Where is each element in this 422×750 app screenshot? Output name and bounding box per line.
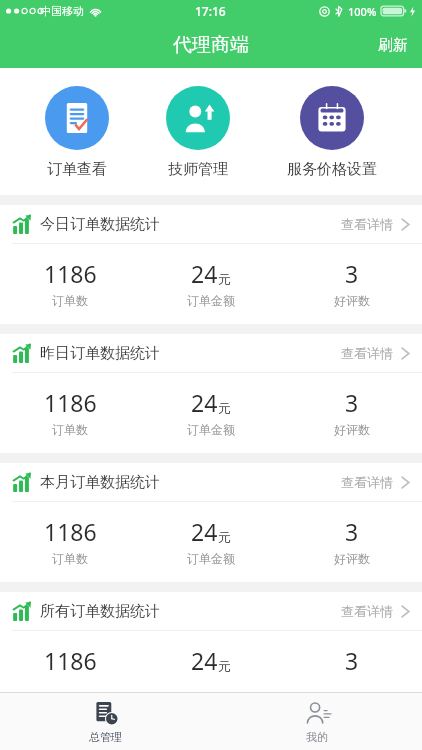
staticText: 元 xyxy=(218,658,231,674)
other: 我的 xyxy=(304,700,330,726)
staticText: 元 xyxy=(218,529,231,545)
staticText: 今日订单数据统计 xyxy=(40,215,160,234)
staticText: 元 xyxy=(218,271,231,287)
staticText: 代理商端 xyxy=(173,33,249,57)
staticText: 订单数 xyxy=(52,422,88,437)
staticText: 100% xyxy=(348,4,377,19)
staticText: 查看详情 xyxy=(341,216,393,232)
staticText: 订单金额 xyxy=(187,293,235,308)
staticText: 所有订单数据统计 xyxy=(40,602,160,621)
staticText: 查看详情 xyxy=(341,474,393,490)
staticText: 3 xyxy=(345,516,359,547)
staticText: 订单数 xyxy=(52,551,88,566)
button[interactable]: 总管理 xyxy=(0,693,211,750)
staticText: 24 xyxy=(191,645,218,676)
staticText: 3 xyxy=(345,258,359,289)
button[interactable]: 所有订单数据统计 xyxy=(0,592,422,630)
staticText: 1186 xyxy=(44,645,97,676)
staticText: 服务价格设置 xyxy=(287,160,377,179)
staticText: 24 xyxy=(191,516,218,547)
staticText: 本月订单数据统计 xyxy=(40,473,160,492)
button[interactable]: 昨日订单数据统计 xyxy=(0,334,422,372)
staticText: 17:16 xyxy=(195,3,226,19)
staticText: 总管理 xyxy=(89,730,122,744)
staticText: 订单查看 xyxy=(47,160,107,179)
other: 总管理 xyxy=(93,700,119,726)
staticText: 1186 xyxy=(44,258,97,289)
button[interactable]: 刷新 xyxy=(364,26,422,65)
button[interactable]: 订单查看 xyxy=(33,86,121,179)
staticText: 3 xyxy=(345,387,359,418)
staticText: 24 xyxy=(191,258,218,289)
staticText: 刷新 xyxy=(378,36,408,55)
staticText: 1186 xyxy=(44,516,97,547)
staticText: 昨日订单数据统计 xyxy=(40,344,160,363)
staticText: 1186 xyxy=(44,387,97,418)
staticText: 查看详情 xyxy=(341,345,393,361)
button[interactable]: 服务价格设置 xyxy=(275,86,389,179)
staticText: 我的 xyxy=(306,730,328,744)
staticText: 好评数 xyxy=(334,422,370,437)
staticText: 订单数 xyxy=(52,293,88,308)
staticText: 订单金额 xyxy=(187,422,235,437)
staticText: 好评数 xyxy=(334,293,370,308)
button[interactable]: 本月订单数据统计 xyxy=(0,463,422,501)
staticText: 中国移动 xyxy=(40,4,84,18)
button[interactable]: 我的 xyxy=(211,693,422,750)
staticText: 24 xyxy=(191,387,218,418)
staticText: 查看详情 xyxy=(341,603,393,619)
staticText: 元 xyxy=(218,400,231,416)
staticText: 订单金额 xyxy=(187,551,235,566)
staticText: 好评数 xyxy=(334,551,370,566)
staticText: 3 xyxy=(345,645,359,676)
staticText: 技师管理 xyxy=(168,160,228,179)
button[interactable]: 今日订单数据统计 xyxy=(0,205,422,243)
button[interactable]: 技师管理 xyxy=(154,86,242,179)
